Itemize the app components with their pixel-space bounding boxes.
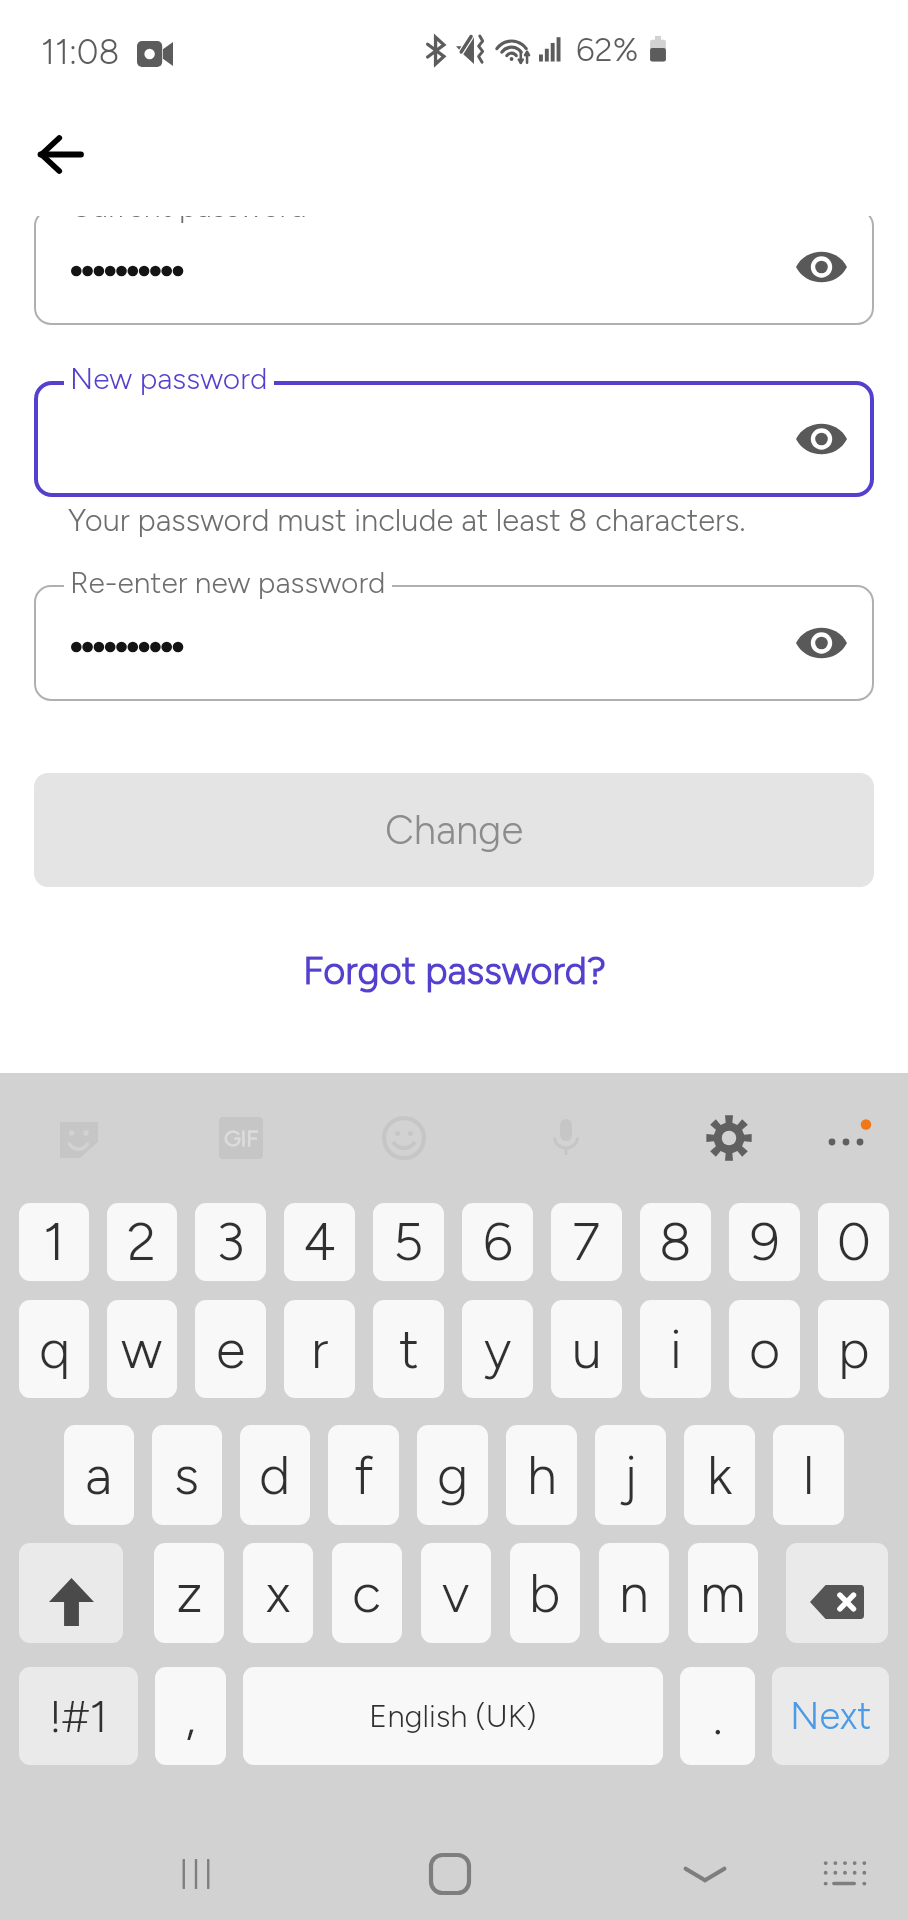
button[interactable]: o [729, 1300, 800, 1398]
button[interactable]: 3 [195, 1203, 266, 1281]
button[interactable]: More options [804, 1096, 888, 1180]
button[interactable]: Backspace [786, 1543, 888, 1643]
staticText: y [484, 1317, 512, 1382]
button[interactable]: x [243, 1543, 313, 1643]
button[interactable]: Change [34, 773, 874, 887]
staticText: i [670, 1317, 682, 1382]
button[interactable]: g [417, 1425, 488, 1525]
button[interactable]: b [510, 1543, 580, 1643]
button[interactable]: 8 [640, 1203, 711, 1281]
button[interactable]: s [152, 1425, 222, 1525]
button[interactable]: t [373, 1300, 444, 1398]
staticText: 62% [576, 30, 639, 70]
button[interactable]: Show password [777, 395, 865, 483]
staticText: 5 [393, 1210, 424, 1274]
staticText: z [176, 1561, 203, 1626]
button[interactable]: Hide keyboard [659, 1828, 751, 1920]
button[interactable]: a [64, 1425, 134, 1525]
button[interactable]: , [155, 1667, 226, 1765]
button[interactable]: m [688, 1543, 758, 1643]
button[interactable]: Home [404, 1828, 496, 1920]
staticText: a [85, 1443, 113, 1508]
button[interactable]: Forgot password? [279, 938, 630, 1004]
staticText: 6 [483, 1210, 513, 1274]
button[interactable]: u [551, 1300, 622, 1398]
button[interactable]: . [680, 1667, 755, 1765]
staticText: q [39, 1317, 70, 1382]
button[interactable]: Stickers [37, 1096, 121, 1180]
staticText: o [749, 1317, 781, 1382]
staticText: 7 [572, 1210, 601, 1274]
button[interactable]: d [240, 1425, 310, 1525]
button[interactable]: r [284, 1300, 355, 1398]
button[interactable]: 4 [284, 1203, 355, 1281]
button[interactable]: !#1 [19, 1667, 138, 1765]
button[interactable]: Shift [19, 1543, 123, 1643]
button[interactable]: 1 [19, 1203, 89, 1281]
staticText: Current password [70, 216, 307, 224]
button[interactable]: p [818, 1300, 889, 1398]
button[interactable]: GIF [199, 1096, 283, 1180]
staticText: m [700, 1561, 746, 1626]
button[interactable]: h [506, 1425, 577, 1525]
button[interactable]: 5 [373, 1203, 444, 1281]
staticText: c [352, 1561, 382, 1626]
staticText: d [259, 1443, 291, 1508]
staticText: g [437, 1443, 469, 1508]
button[interactable]: i [640, 1300, 711, 1398]
button[interactable]: n [599, 1543, 669, 1643]
button[interactable]: Show password [777, 223, 865, 311]
staticText: p [838, 1317, 870, 1382]
button[interactable]: 2 [107, 1203, 177, 1281]
staticText: Change [385, 806, 524, 854]
button[interactable]: Keyboard settings [687, 1096, 771, 1180]
staticText: t [399, 1317, 419, 1382]
staticText: Forgot password? [303, 948, 606, 994]
button[interactable]: c [332, 1543, 402, 1643]
staticText: s [174, 1443, 200, 1508]
staticText: Next [790, 1693, 872, 1739]
button[interactable]: q [19, 1300, 89, 1398]
staticText: 3 [216, 1210, 245, 1274]
button[interactable]: w [107, 1300, 177, 1398]
button[interactable]: English (UK) [243, 1667, 663, 1765]
button[interactable]: 9 [729, 1203, 800, 1281]
staticText: e [216, 1317, 246, 1382]
staticText: k [707, 1443, 733, 1508]
button[interactable]: f [328, 1425, 399, 1525]
staticText: w [121, 1317, 163, 1382]
staticText: f [354, 1443, 374, 1508]
button[interactable]: l [773, 1425, 844, 1525]
staticText: !#1 [49, 1690, 108, 1743]
staticText: j [623, 1443, 638, 1508]
button[interactable]: z [154, 1543, 224, 1643]
button[interactable]: v [421, 1543, 491, 1643]
button[interactable]: k [684, 1425, 755, 1525]
button[interactable]: Emoji [362, 1096, 446, 1180]
staticText: h [527, 1443, 557, 1508]
button[interactable]: Change keyboard [799, 1828, 891, 1920]
button[interactable]: 6 [462, 1203, 533, 1281]
button[interactable]: y [462, 1300, 533, 1398]
button[interactable]: Back [14, 108, 106, 200]
button[interactable]: Next [772, 1667, 889, 1765]
staticText: r [311, 1317, 329, 1382]
staticText: b [529, 1561, 561, 1626]
staticText: . [713, 1686, 723, 1746]
button[interactable]: 0 [818, 1203, 889, 1281]
button[interactable]: Recents [150, 1828, 242, 1920]
button[interactable]: e [195, 1300, 266, 1398]
staticText: GIF [224, 1125, 259, 1151]
staticText: l [803, 1443, 815, 1508]
button[interactable]: 7 [551, 1203, 622, 1281]
staticText: n [619, 1561, 649, 1626]
staticText: v [442, 1561, 470, 1626]
staticText: 0 [837, 1210, 871, 1274]
staticText: x [266, 1561, 291, 1626]
button[interactable]: Show password [777, 599, 865, 687]
staticText: 4 [303, 1210, 336, 1274]
staticText: 2 [127, 1210, 157, 1274]
staticText: 8 [659, 1210, 692, 1274]
button[interactable]: j [595, 1425, 666, 1525]
